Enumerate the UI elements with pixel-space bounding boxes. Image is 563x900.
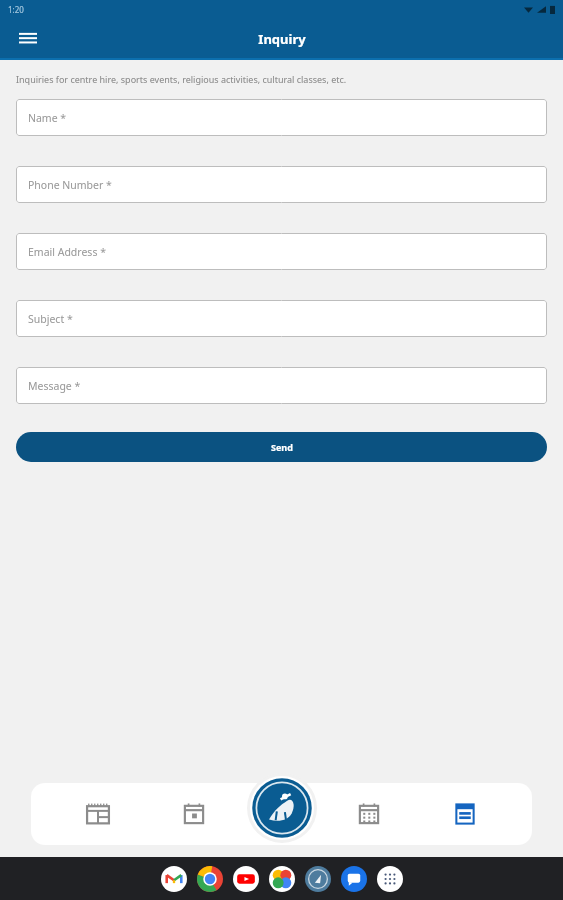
staticText: Email Address * xyxy=(28,245,106,259)
button[interactable]: App xyxy=(197,866,223,892)
button[interactable]: Inquiry xyxy=(436,787,494,841)
staticText: 1:20 xyxy=(8,4,24,15)
button[interactable]: Name * xyxy=(16,99,547,136)
button[interactable]: App xyxy=(233,866,259,892)
button[interactable]: App xyxy=(305,866,331,892)
button[interactable]: Dashboard xyxy=(69,787,127,841)
button[interactable]: App xyxy=(161,866,187,892)
button[interactable]: Message * xyxy=(16,367,547,404)
button[interactable]: App xyxy=(377,866,403,892)
staticText: Inquiries for centre hire, sports events… xyxy=(16,73,347,85)
button[interactable]: Calendar xyxy=(340,787,398,841)
staticText: Send xyxy=(271,441,293,453)
staticText: Phone Number * xyxy=(28,178,112,192)
button[interactable]: Email Address * xyxy=(16,233,547,270)
staticText: Inquiry xyxy=(258,30,306,48)
button[interactable]: Phone Number * xyxy=(16,166,547,203)
staticText: Subject * xyxy=(28,312,73,326)
button[interactable]: Send xyxy=(16,432,547,462)
button[interactable]: Events xyxy=(165,787,223,841)
staticText: Message * xyxy=(28,379,81,393)
button[interactable]: App xyxy=(269,866,295,892)
button[interactable]: Subject * xyxy=(16,300,547,337)
button[interactable]: Home xyxy=(247,773,317,843)
button[interactable]: Open navigation menu xyxy=(12,23,44,55)
button[interactable]: App xyxy=(341,866,367,892)
staticText: Name * xyxy=(28,111,67,125)
